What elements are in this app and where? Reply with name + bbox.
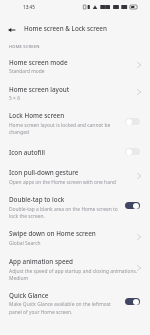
- staticText: lock the screen.: [9, 213, 45, 220]
- button[interactable]: [0, 191, 150, 225]
- staticText: Home screen & Lock screen: [24, 24, 107, 33]
- staticText: Standard mode: [9, 68, 45, 75]
- staticText: Home screen mode: [9, 58, 68, 67]
- staticText: HOME SCREEN: [9, 44, 40, 50]
- staticText: Home screen layout: [9, 85, 70, 94]
- staticText: Icon pull-down gesture: [9, 168, 79, 177]
- button[interactable]: [0, 286, 150, 320]
- staticText: Lock Home screen: [9, 111, 65, 120]
- staticText: panel of your Home screen.: [9, 309, 73, 316]
- button[interactable]: [0, 253, 150, 287]
- button[interactable]: [0, 164, 150, 190]
- button[interactable]: [0, 53, 150, 79]
- staticText: App animation speed: [9, 257, 74, 266]
- staticText: Icon autofill: [9, 148, 45, 157]
- staticText: Quick Glance: [9, 291, 49, 300]
- staticText: Adjust the speed of app startup and clos…: [9, 268, 138, 275]
- button[interactable]: [0, 225, 150, 251]
- staticText: Double-tap a blank area on the Home scre…: [9, 206, 118, 213]
- button[interactable]: [0, 107, 150, 141]
- staticText: 5 × 6: [9, 95, 20, 102]
- button[interactable]: [0, 144, 150, 161]
- staticText: Home screen layout is locked and cannot …: [9, 122, 111, 129]
- staticText: Global Search: [9, 240, 41, 247]
- staticText: Make Quick Glance available on the leftm…: [9, 301, 111, 308]
- staticText: Swipe down on Home screen: [9, 229, 96, 238]
- staticText: changed: [9, 129, 29, 136]
- button[interactable]: Back: [3, 22, 19, 38]
- staticText: Open apps on the Home screen with one ha…: [9, 179, 116, 186]
- staticText: Medium: [9, 275, 29, 282]
- staticText: Double-tap to lock: [9, 195, 65, 204]
- staticText: 13:45: [23, 4, 35, 10]
- button[interactable]: [0, 80, 150, 106]
